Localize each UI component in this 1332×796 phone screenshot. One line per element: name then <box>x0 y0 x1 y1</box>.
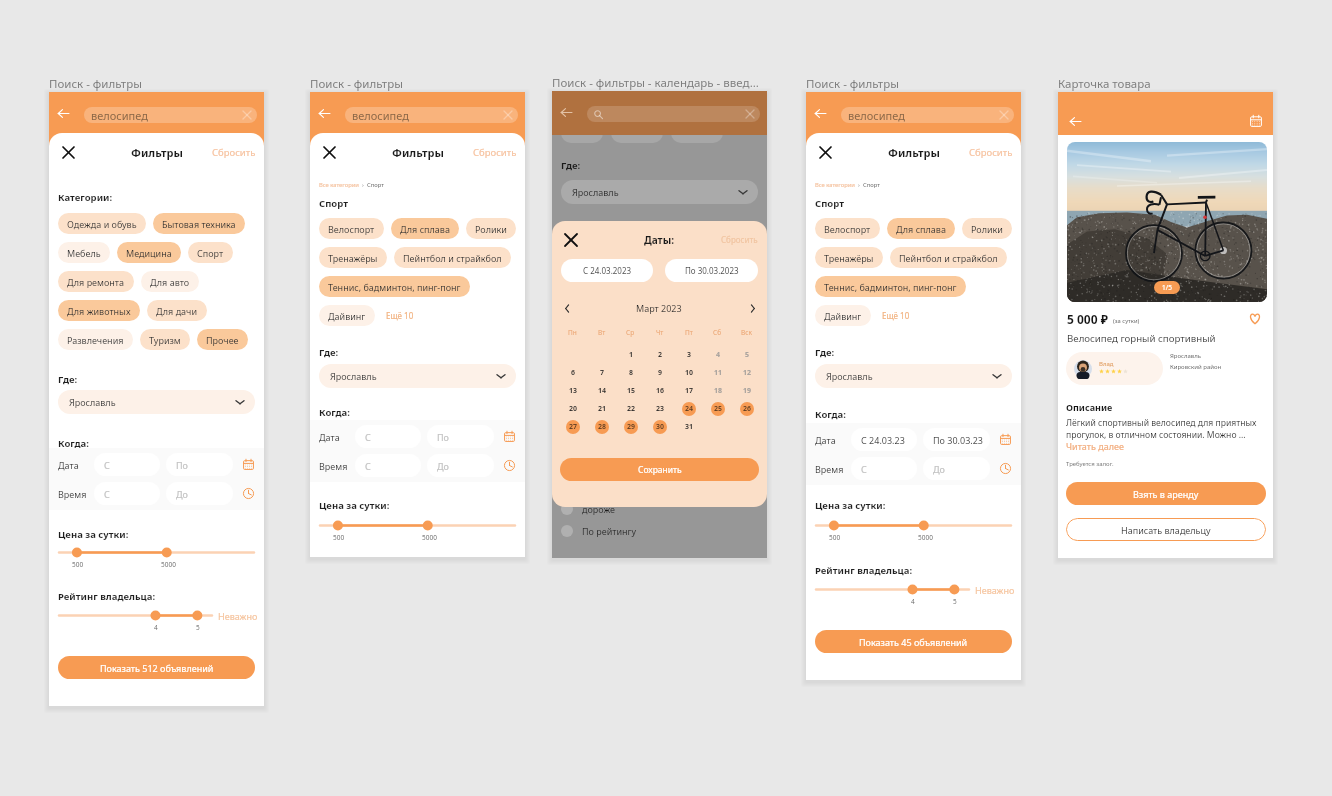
button[interactable]: Пейнтбол и страйкбол <box>890 247 1007 268</box>
button[interactable]: Дайвинг <box>319 305 375 326</box>
button[interactable]: Предыдущий месяц <box>561 302 573 314</box>
button[interactable]: Для авто <box>141 271 199 292</box>
button[interactable]: С <box>94 453 160 476</box>
button[interactable]: Время <box>999 462 1012 475</box>
button[interactable]: До <box>427 454 494 477</box>
button[interactable]: Для ремонта <box>58 271 134 292</box>
button[interactable]: Календарь <box>1248 113 1264 129</box>
button[interactable]: Тренажёры <box>319 247 387 268</box>
button[interactable]: Ролики <box>466 218 516 239</box>
button[interactable]: 23 <box>653 402 667 416</box>
button[interactable]: Велоспорт <box>815 218 880 239</box>
button[interactable]: Время <box>503 459 516 472</box>
button[interactable]: Туризм <box>140 329 190 350</box>
button[interactable]: 8 <box>624 366 638 380</box>
button[interactable]: 21 <box>595 402 609 416</box>
button[interactable]: Закрыть <box>321 144 337 160</box>
button[interactable]: Назад <box>55 105 71 121</box>
button[interactable]: Мебель <box>58 242 110 263</box>
button[interactable]: Время <box>242 487 255 500</box>
button[interactable]: По 30.03.2023 <box>665 259 758 282</box>
button[interactable]: Ролики <box>962 218 1012 239</box>
button[interactable]: Медицина <box>117 242 181 263</box>
button[interactable] <box>587 106 760 122</box>
button[interactable]: Закрыть <box>817 144 833 160</box>
button[interactable]: В избранное <box>1248 312 1262 326</box>
button[interactable]: Ярославль <box>319 364 516 388</box>
button[interactable]: Взять в аренду <box>1066 482 1266 505</box>
button[interactable]: Сбросить <box>212 146 256 159</box>
button[interactable]: 24 <box>682 402 696 416</box>
button[interactable]: С 24.03.23 <box>851 428 917 451</box>
button[interactable]: 11 <box>711 366 725 380</box>
button[interactable]: Календарь <box>503 430 516 443</box>
button[interactable]: Календарь <box>242 458 255 471</box>
button[interactable]: 20 <box>566 402 580 416</box>
button[interactable]: Бытовая техника <box>153 213 245 234</box>
button[interactable]: Теннис, бадминтон, пинг-понг <box>815 276 966 297</box>
button[interactable]: С <box>851 457 917 480</box>
button[interactable]: Ещё 10 <box>386 310 414 321</box>
button[interactable]: 13 <box>566 384 580 398</box>
button[interactable]: Велоспорт <box>319 218 384 239</box>
button[interactable]: Прочее <box>197 329 248 350</box>
button[interactable]: Ярославль <box>58 390 255 414</box>
button[interactable]: Сбросить <box>721 234 758 245</box>
button[interactable]: велосипед <box>841 107 1014 123</box>
button[interactable]: 10 <box>682 366 696 380</box>
button[interactable]: 29 <box>624 420 638 434</box>
button[interactable]: Ярославль <box>815 364 1012 388</box>
button[interactable]: Читать далее <box>1066 440 1124 452</box>
button[interactable]: велосипед <box>345 107 518 123</box>
button[interactable]: С <box>355 425 421 448</box>
button[interactable]: Назад <box>1066 112 1084 130</box>
button[interactable]: По <box>427 425 494 448</box>
button[interactable]: Для сплава <box>887 218 955 239</box>
button[interactable]: 30 <box>653 420 667 434</box>
button[interactable]: 14 <box>595 384 609 398</box>
button[interactable]: Ярославль <box>561 180 758 204</box>
button[interactable]: Дайвинг <box>815 305 871 326</box>
button[interactable]: Тренажёры <box>815 247 883 268</box>
button[interactable]: 19 <box>740 384 754 398</box>
button[interactable]: 18 <box>711 384 725 398</box>
button[interactable]: До <box>923 457 990 480</box>
button[interactable]: Для сплава <box>391 218 459 239</box>
button[interactable]: Назад <box>316 105 332 121</box>
button[interactable]: Следующий месяц <box>746 302 758 314</box>
button[interactable]: По рейтингу <box>561 525 637 537</box>
button[interactable]: По 30.03.23 <box>923 428 990 451</box>
button[interactable]: 15 <box>624 384 638 398</box>
button[interactable]: До <box>166 482 233 505</box>
button[interactable]: Для дачи <box>147 300 207 321</box>
button[interactable]: Спорт <box>188 242 233 263</box>
button[interactable]: 9 <box>653 366 667 380</box>
button[interactable]: 31 <box>682 420 696 434</box>
button[interactable]: 22 <box>624 402 638 416</box>
button[interactable]: 4 <box>711 348 725 362</box>
button[interactable]: 26 <box>740 402 754 416</box>
button[interactable]: Теннис, бадминтон, пинг-понг <box>319 276 470 297</box>
button[interactable]: 3 <box>682 348 696 362</box>
button[interactable]: Пейнтбол и страйкбол <box>394 247 511 268</box>
button[interactable]: 12 <box>740 366 754 380</box>
button[interactable]: Для животных <box>58 300 140 321</box>
button[interactable]: С <box>355 454 421 477</box>
button[interactable]: 5 <box>740 348 754 362</box>
button[interactable]: Назад <box>812 105 828 121</box>
button[interactable]: Развлечения <box>58 329 133 350</box>
button[interactable]: С 24.03.2023 <box>561 259 653 282</box>
button[interactable]: 27 <box>566 420 580 434</box>
button[interactable]: Одежда и обувь <box>58 213 146 234</box>
button[interactable]: 1 <box>624 348 638 362</box>
button[interactable]: Закрыть <box>563 232 579 248</box>
button[interactable]: Показать 45 объявлений <box>815 630 1012 653</box>
button[interactable]: 16 <box>653 384 667 398</box>
button[interactable]: Назад <box>558 104 574 120</box>
button[interactable]: Написать владельцу <box>1066 518 1266 541</box>
button[interactable]: Сбросить <box>969 146 1013 159</box>
button[interactable]: Ещё 10 <box>882 310 910 321</box>
button[interactable]: Показать 512 объявлений <box>58 656 255 679</box>
button[interactable]: Сохранить <box>560 458 759 481</box>
button[interactable]: Календарь <box>999 433 1012 446</box>
